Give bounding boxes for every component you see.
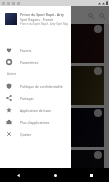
button[interactable]: Princesse [0, 24, 104, 63]
button[interactable]: Bodigham [0, 66, 104, 105]
button[interactable]: Search library [96, 10, 107, 21]
button[interactable]: Quitter [0, 128, 71, 140]
button[interactable]: Musique [0, 150, 104, 182]
staticText: Application de base [20, 108, 52, 113]
staticText: Quitter [20, 132, 32, 137]
staticText: Favoris [20, 48, 32, 53]
button[interactable]: Liberte [0, 108, 104, 147]
staticText: Plus d'applications [20, 120, 50, 125]
staticText: Prince du Sport Rapit - Arty Sprit Rag [20, 22, 69, 26]
button[interactable]: Politique de confidentialité [0, 80, 71, 92]
staticText: Politique de confidentialité [20, 84, 63, 89]
button[interactable]: Recents [73, 168, 109, 182]
button[interactable]: Favoris [0, 44, 71, 56]
staticText: Liberte [2, 121, 14, 125]
staticText: Partager [20, 96, 34, 101]
button[interactable]: Plus d'applications [0, 116, 71, 128]
button[interactable]: Back [0, 168, 37, 182]
button[interactable]: Search [85, 10, 96, 21]
staticText: Sprit Ragaes - Franck [20, 17, 54, 22]
button[interactable]: Paramètres [0, 56, 71, 68]
button[interactable]: Application de base [0, 104, 71, 116]
button[interactable]: Partager [0, 92, 71, 104]
button[interactable]: Album art [5, 13, 17, 25]
staticText: Prince du Sport Rapit - Arty [20, 12, 64, 17]
button[interactable]: Home [37, 168, 73, 182]
staticText: Autres [7, 72, 17, 76]
staticText: Paramètres [20, 60, 39, 65]
